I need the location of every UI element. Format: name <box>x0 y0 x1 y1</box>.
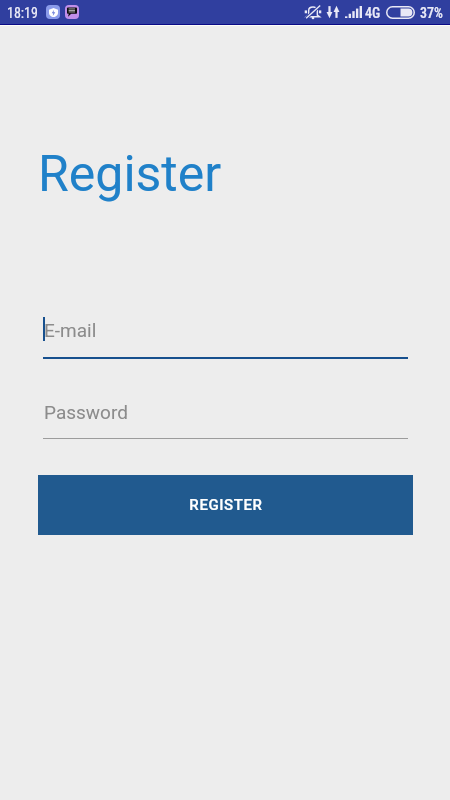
other: Signal strength <box>345 6 362 18</box>
staticText: 18:19 <box>7 5 38 21</box>
staticText: Register <box>38 145 222 204</box>
other: Mobile data <box>326 5 340 19</box>
other: Silent mode <box>304 4 322 20</box>
staticText: 4G <box>365 5 381 21</box>
button[interactable]: E-mail <box>38 305 412 365</box>
staticText: E-mail <box>44 319 97 341</box>
staticText: Password <box>44 401 128 423</box>
button[interactable]: Password <box>38 387 412 445</box>
button[interactable]: REGISTER <box>38 475 413 535</box>
staticText: 37% <box>420 5 443 21</box>
other: Battery <box>386 6 415 19</box>
staticText: REGISTER <box>189 496 263 514</box>
